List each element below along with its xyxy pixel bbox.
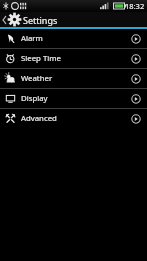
button[interactable]: Open Advanced: [129, 112, 143, 126]
button[interactable]: Display: [0, 89, 147, 108]
staticText: 18:32: [125, 1, 145, 11]
button[interactable]: Open Sleep Time: [129, 52, 143, 66]
button[interactable]: Alarm: [0, 29, 147, 48]
staticText: Weather: [21, 73, 129, 84]
staticText: Sleep Time: [21, 53, 129, 64]
button[interactable]: Open Weather: [129, 72, 143, 86]
staticText: Alarm: [21, 33, 129, 44]
staticText: Display: [21, 93, 129, 104]
staticText: Advanced: [21, 113, 129, 124]
staticText: Settings: [23, 14, 58, 26]
button[interactable]: Settings, navigate up: [0, 12, 147, 27]
button[interactable]: Open Alarm: [129, 32, 143, 46]
button[interactable]: Sleep Time: [0, 49, 147, 68]
button[interactable]: Advanced: [0, 109, 147, 128]
button[interactable]: Open Display: [129, 92, 143, 106]
button[interactable]: Weather: [0, 69, 147, 88]
